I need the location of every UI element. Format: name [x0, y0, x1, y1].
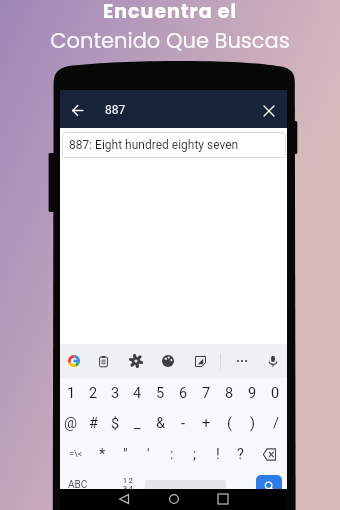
button[interactable]: Recent apps [213, 489, 233, 509]
staticText: ABC [68, 479, 88, 489]
button[interactable]: 7 [195, 378, 218, 408]
staticText: 5 [156, 385, 165, 402]
staticText: ! [216, 446, 220, 463]
staticText: 1 2 [123, 477, 133, 485]
staticText: 3 [111, 385, 120, 402]
staticText: * [99, 446, 106, 463]
button[interactable]: Themes [160, 353, 176, 369]
button[interactable]: " [114, 439, 137, 470]
button[interactable]: _ [126, 408, 149, 439]
staticText: Contenido Que Buscas [50, 26, 290, 55]
button[interactable]: ABC [60, 470, 95, 489]
button[interactable]: Settings [128, 353, 144, 369]
button[interactable]: 5 [149, 378, 172, 408]
staticText: $ [111, 415, 120, 432]
staticText: 2 [89, 385, 98, 402]
staticText: ( [227, 415, 232, 432]
button[interactable]: 4 [126, 378, 149, 408]
button[interactable]: - [172, 408, 195, 439]
staticText: & [156, 415, 166, 432]
button[interactable]: Clear search [254, 96, 284, 126]
staticText: 887 [105, 103, 126, 117]
staticText: 1 [67, 385, 76, 402]
staticText: + [202, 415, 211, 432]
button[interactable]: 2 [82, 378, 104, 408]
button[interactable]: 6 [172, 378, 195, 408]
button[interactable]: : [160, 439, 183, 470]
staticText: / [273, 415, 279, 432]
button[interactable]: * [91, 439, 114, 470]
staticText: _ [134, 415, 141, 432]
button[interactable]: Voice input [265, 353, 281, 369]
staticText: : [170, 446, 174, 463]
button[interactable]: 887: Eight hundred eighty seven [62, 132, 286, 158]
button[interactable]: 3 [104, 378, 126, 408]
button[interactable]: + [195, 408, 218, 439]
staticText: ? [237, 446, 244, 463]
button[interactable]: 1 [60, 378, 82, 408]
button[interactable]: ( [218, 408, 241, 439]
button[interactable]: Back [114, 489, 134, 509]
staticText: 9 [248, 385, 257, 402]
button[interactable]: ' [137, 439, 160, 470]
staticText: ; [193, 446, 197, 463]
staticText: @ [64, 415, 78, 432]
button[interactable]: Home [164, 489, 184, 509]
staticText: 8 [225, 385, 234, 402]
button[interactable]: Stickers [192, 353, 208, 369]
button[interactable]: =\< [60, 439, 91, 470]
button[interactable]: 9 [241, 378, 264, 408]
button[interactable]: Search [256, 475, 282, 489]
button[interactable]: Backspace [252, 439, 287, 470]
button[interactable]: & [149, 408, 172, 439]
staticText: " [123, 446, 128, 463]
staticText: 7 [202, 385, 211, 402]
button[interactable]: Back [62, 95, 92, 125]
button[interactable]: 8 [218, 378, 241, 408]
staticText: ' [147, 446, 150, 463]
button[interactable]: 0 [264, 378, 287, 408]
staticText: 6 [179, 385, 188, 402]
button[interactable]: More options [234, 353, 250, 369]
staticText: 4 [133, 385, 142, 402]
staticText: =\< [69, 449, 83, 460]
button[interactable]: $ [104, 408, 126, 439]
button[interactable]: # [82, 408, 104, 439]
button[interactable]: @ [60, 408, 82, 439]
staticText: - [181, 415, 186, 432]
button[interactable]: ? [229, 439, 252, 470]
button[interactable]: Google [66, 353, 82, 369]
staticText: 3 4 [123, 485, 133, 489]
button[interactable]: ! [206, 439, 229, 470]
button[interactable]: ) [241, 408, 264, 439]
staticText: ) [250, 415, 256, 432]
staticText: Encuentra el [103, 0, 237, 25]
staticText: # [89, 415, 98, 432]
button[interactable]: ; [183, 439, 206, 470]
staticText: 0 [271, 385, 280, 402]
button[interactable]: / [264, 408, 287, 439]
button[interactable]: 1 2 [111, 470, 145, 489]
button[interactable]: Clipboard [95, 353, 111, 369]
staticText: 887: Eight hundred eighty seven [69, 138, 239, 152]
